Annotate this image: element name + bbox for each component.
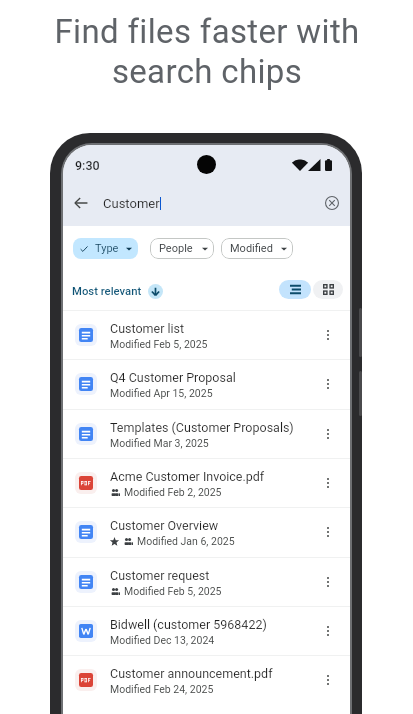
staticText: Modified Feb 2, 2025 (124, 486, 222, 498)
button[interactable]: List view (279, 280, 311, 299)
button[interactable]: Templates (Customer Proposals) (63, 410, 350, 458)
staticText: Modified Feb 5, 2025 (124, 585, 222, 597)
staticText: Customer request (110, 568, 210, 583)
button[interactable]: Q4 Customer Proposal (63, 360, 350, 408)
button[interactable]: Customer request (63, 558, 350, 606)
button[interactable]: Customer Overview (63, 508, 350, 556)
button[interactable]: Back (67, 189, 94, 216)
staticText: Customer announcement.pdf (110, 666, 273, 681)
button[interactable]: Clear search (320, 191, 344, 215)
button[interactable]: More options (314, 656, 342, 704)
staticText: Modified Mar 3, 2025 (110, 437, 209, 449)
button[interactable]: Customer announcement.pdf (63, 656, 350, 704)
staticText: Modified Jan 6, 2025 (137, 535, 235, 547)
button[interactable]: More options (314, 558, 342, 606)
staticText: Modified Apr 15, 2025 (110, 387, 213, 399)
button[interactable]: People (150, 238, 214, 259)
button[interactable]: Modified (221, 238, 293, 259)
button[interactable]: Bidwell (customer 5968422) (63, 607, 350, 655)
button[interactable]: Grid view (313, 280, 343, 299)
button[interactable]: More options (314, 508, 342, 556)
staticText: Find files faster with search chips (54, 12, 360, 91)
button[interactable]: More options (314, 360, 342, 408)
staticText: Customer (103, 196, 160, 211)
staticText: Q4 Customer Proposal (110, 370, 236, 385)
button[interactable]: Most relevant (72, 284, 163, 299)
staticText: Customer list (110, 321, 185, 336)
staticText: Templates (Customer Proposals) (110, 420, 294, 435)
staticText: Modified Feb 5, 2025 (110, 338, 208, 350)
staticText: Modified Feb 24, 2025 (110, 683, 214, 695)
button[interactable]: Customer list (63, 311, 350, 359)
staticText: Most relevant (72, 285, 142, 298)
button[interactable]: Type (73, 238, 138, 259)
staticText: People (159, 242, 193, 255)
staticText: Modified Dec 13, 2024 (110, 634, 215, 646)
button[interactable]: More options (314, 311, 342, 359)
button[interactable]: More options (314, 459, 342, 507)
staticText: Type (95, 242, 119, 255)
staticText: 9:30 (75, 158, 100, 173)
button[interactable]: More options (314, 410, 342, 458)
button[interactable]: More options (314, 607, 342, 655)
button[interactable]: Acme Customer Invoice.pdf (63, 459, 350, 507)
staticText: Bidwell (customer 5968422) (110, 617, 267, 632)
staticText: Customer Overview (110, 518, 219, 533)
staticText: Acme Customer Invoice.pdf (110, 469, 265, 484)
staticText: Modified (230, 242, 273, 255)
